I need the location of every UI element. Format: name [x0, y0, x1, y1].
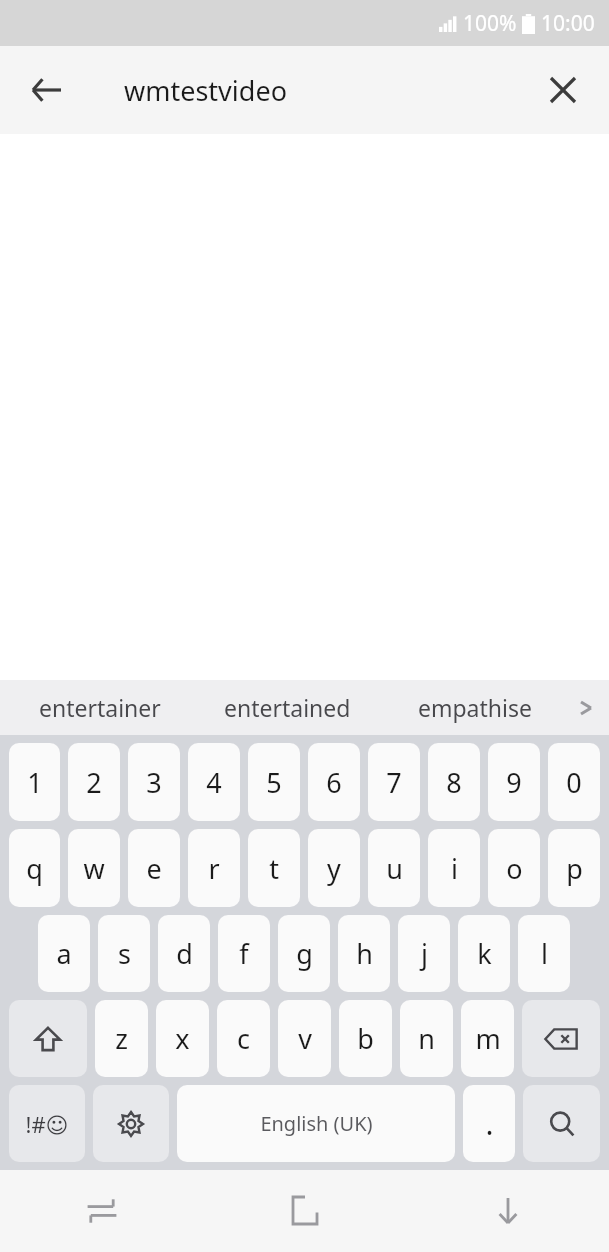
staticText: 3	[146, 764, 162, 801]
button[interactable]: 0	[548, 743, 600, 821]
staticText: g	[296, 935, 313, 972]
staticText: !#☺	[25, 1109, 69, 1139]
staticText: entertainer	[39, 692, 161, 723]
button[interactable]: .	[463, 1085, 515, 1162]
staticText: 6	[326, 764, 342, 801]
staticText: w	[83, 850, 105, 887]
staticText: 100%	[463, 9, 517, 38]
button[interactable]: d	[158, 915, 210, 992]
button[interactable]: 9	[488, 743, 540, 821]
button[interactable]: 7	[368, 743, 420, 821]
button[interactable]: entertained	[193, 680, 381, 735]
button[interactable]: Search	[523, 1085, 600, 1162]
button[interactable]: s	[98, 915, 150, 992]
staticText: e	[146, 850, 162, 887]
button[interactable]: Home	[203, 1170, 406, 1252]
staticText: English (UK)	[260, 1110, 373, 1137]
staticText: 7	[386, 764, 402, 801]
staticText: s	[118, 935, 131, 972]
button[interactable]: i	[428, 829, 480, 907]
staticText: x	[175, 1020, 190, 1057]
button[interactable]: c	[217, 1000, 270, 1077]
staticText: l	[541, 935, 548, 972]
staticText: h	[356, 935, 373, 972]
staticText: i	[451, 850, 458, 887]
button[interactable]: l	[518, 915, 570, 992]
staticText: entertained	[224, 692, 351, 723]
staticText: r	[208, 850, 220, 887]
button[interactable]: 8	[428, 743, 480, 821]
staticText: y	[327, 850, 341, 887]
button[interactable]: a	[38, 915, 90, 992]
staticText: 1	[27, 764, 43, 801]
button[interactable]: More suggestions	[569, 680, 603, 735]
button[interactable]: 5	[248, 743, 300, 821]
button[interactable]: n	[400, 1000, 453, 1077]
button[interactable]: Back	[14, 58, 78, 122]
button[interactable]: t	[248, 829, 300, 907]
button[interactable]: v	[278, 1000, 331, 1077]
staticText: 8	[446, 764, 462, 801]
staticText: 10:00	[541, 9, 595, 38]
staticText: 0	[566, 764, 582, 801]
button[interactable]: 4	[188, 743, 240, 821]
staticText: j	[421, 935, 428, 972]
button[interactable]: r	[188, 829, 240, 907]
button[interactable]: empathise	[381, 680, 569, 735]
button[interactable]: f	[218, 915, 270, 992]
staticText: .	[485, 1103, 494, 1144]
button[interactable]: Keyboard settings	[93, 1085, 169, 1162]
staticText: p	[566, 850, 583, 887]
staticText: t	[269, 850, 279, 887]
button[interactable]: 3	[128, 743, 180, 821]
button[interactable]: 6	[308, 743, 360, 821]
button[interactable]: z	[95, 1000, 148, 1077]
button[interactable]: e	[128, 829, 180, 907]
staticText: 9	[506, 764, 522, 801]
staticText: a	[56, 935, 72, 972]
button[interactable]: k	[458, 915, 510, 992]
button[interactable]: Backspace	[522, 1000, 600, 1077]
button[interactable]: p	[548, 829, 600, 907]
staticText: z	[115, 1020, 128, 1057]
button[interactable]: g	[278, 915, 330, 992]
button[interactable]: 1	[9, 743, 60, 821]
button[interactable]: m	[461, 1000, 514, 1077]
button[interactable]: u	[368, 829, 420, 907]
staticText: v	[298, 1020, 312, 1057]
button[interactable]: !#☺	[9, 1085, 85, 1162]
button[interactable]: x	[156, 1000, 209, 1077]
staticText: o	[506, 850, 523, 887]
staticText: c	[237, 1020, 250, 1057]
staticText: m	[475, 1020, 501, 1057]
button[interactable]: English (UK)	[177, 1085, 455, 1162]
button[interactable]: h	[338, 915, 390, 992]
staticText: f	[239, 935, 249, 972]
staticText: n	[418, 1020, 435, 1057]
staticText: 4	[206, 764, 222, 801]
staticText: u	[386, 850, 403, 887]
button[interactable]: 2	[68, 743, 120, 821]
staticText: q	[26, 850, 43, 887]
staticText: 2	[86, 764, 102, 801]
button[interactable]: o	[488, 829, 540, 907]
button[interactable]: q	[9, 829, 60, 907]
staticText: b	[357, 1020, 374, 1057]
button[interactable]: Shift	[9, 1000, 87, 1077]
button[interactable]: y	[308, 829, 360, 907]
staticText: empathise	[418, 692, 532, 723]
button[interactable]: j	[398, 915, 450, 992]
staticText: wmtestvideo	[124, 72, 287, 109]
button[interactable]: Hide keyboard	[406, 1170, 609, 1252]
staticText: d	[176, 935, 193, 972]
button[interactable]: Clear	[533, 60, 593, 120]
staticText: k	[477, 935, 492, 972]
button[interactable]: b	[339, 1000, 392, 1077]
button[interactable]: w	[68, 829, 120, 907]
button[interactable]: Recent apps	[0, 1170, 203, 1252]
staticText: 5	[266, 764, 282, 801]
button[interactable]: entertainer	[6, 680, 193, 735]
